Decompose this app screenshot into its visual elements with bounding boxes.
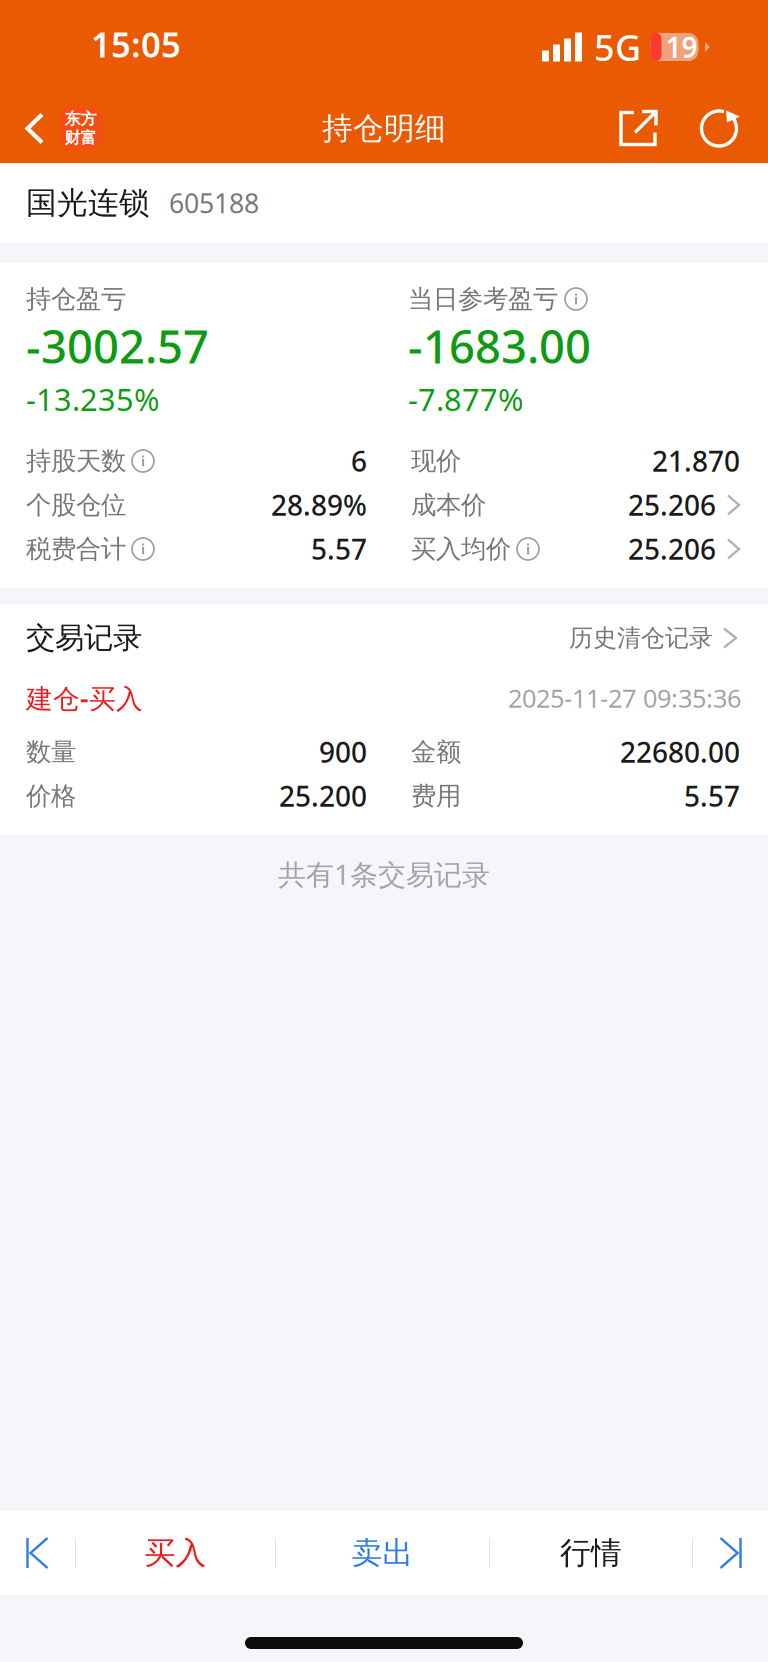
staticText: 建仓-买入 <box>26 680 143 716</box>
staticText <box>126 534 132 564</box>
staticText: 19 <box>665 28 697 66</box>
staticText: -7.877% <box>408 379 523 419</box>
button[interactable]: 下一个 <box>693 1511 768 1595</box>
staticText: 持股天数 <box>26 445 126 476</box>
button[interactable]: 买入 <box>76 1511 275 1595</box>
staticText: 现价 <box>411 445 461 476</box>
staticText: 个股仓位 <box>26 489 126 520</box>
staticText: 25.206 <box>628 486 716 524</box>
staticText: 历史清仓记录 <box>569 623 713 653</box>
staticText: 买入均价 <box>411 533 511 564</box>
staticText: 2025-11-27 09:35:36 <box>508 681 741 715</box>
staticText <box>511 534 517 564</box>
staticText: 15:05 <box>91 21 181 67</box>
staticText: -1683.00 <box>408 316 591 376</box>
staticText: 税费合计 <box>26 533 126 564</box>
staticText: 持仓盈亏 <box>26 283 126 314</box>
staticText: 卖出 <box>351 1534 413 1572</box>
staticText: 28.89% <box>271 486 367 524</box>
staticText: 成本价 <box>411 489 486 520</box>
staticText: 6 <box>351 442 367 480</box>
staticText: 费用 <box>411 780 461 811</box>
staticText: 国光连锁 <box>26 184 150 222</box>
staticText: 交易记录 <box>26 620 142 656</box>
staticText: -13.235% <box>26 379 159 419</box>
staticText: 5.57 <box>684 777 740 815</box>
staticText: 东方 <box>64 109 96 129</box>
button[interactable]: 刷新 <box>681 94 759 163</box>
staticText: 21.870 <box>652 442 740 480</box>
staticText: 数量 <box>26 736 76 767</box>
staticText: 金额 <box>411 736 461 767</box>
button[interactable]: 返回 东方财富 <box>0 94 112 163</box>
staticText: 25.200 <box>279 777 367 815</box>
button[interactable]: 分享 <box>597 94 681 163</box>
staticText <box>126 446 132 476</box>
staticText: 价格 <box>26 780 76 811</box>
staticText: 买入 <box>144 1534 206 1572</box>
staticText: -3002.57 <box>26 316 209 376</box>
button[interactable]: 上一个 <box>0 1511 75 1595</box>
staticText: 900 <box>319 733 367 771</box>
button[interactable]: 卖出 <box>276 1511 489 1595</box>
staticText: 605188 <box>169 185 259 221</box>
button[interactable]: 行情 <box>490 1511 692 1595</box>
staticText: 25.206 <box>628 530 716 568</box>
staticText: 共有1条交易记录 <box>278 855 490 893</box>
staticText: 5.57 <box>311 530 367 568</box>
staticText: 5G <box>594 23 641 71</box>
staticText: 持仓明细 <box>322 110 446 147</box>
staticText: 当日参考盈亏 <box>408 283 558 314</box>
staticText: 22680.00 <box>620 733 740 771</box>
staticText: 行情 <box>560 1534 622 1572</box>
staticText: 财富 <box>64 128 96 148</box>
button[interactable]: 历史清仓记录 <box>569 623 737 653</box>
